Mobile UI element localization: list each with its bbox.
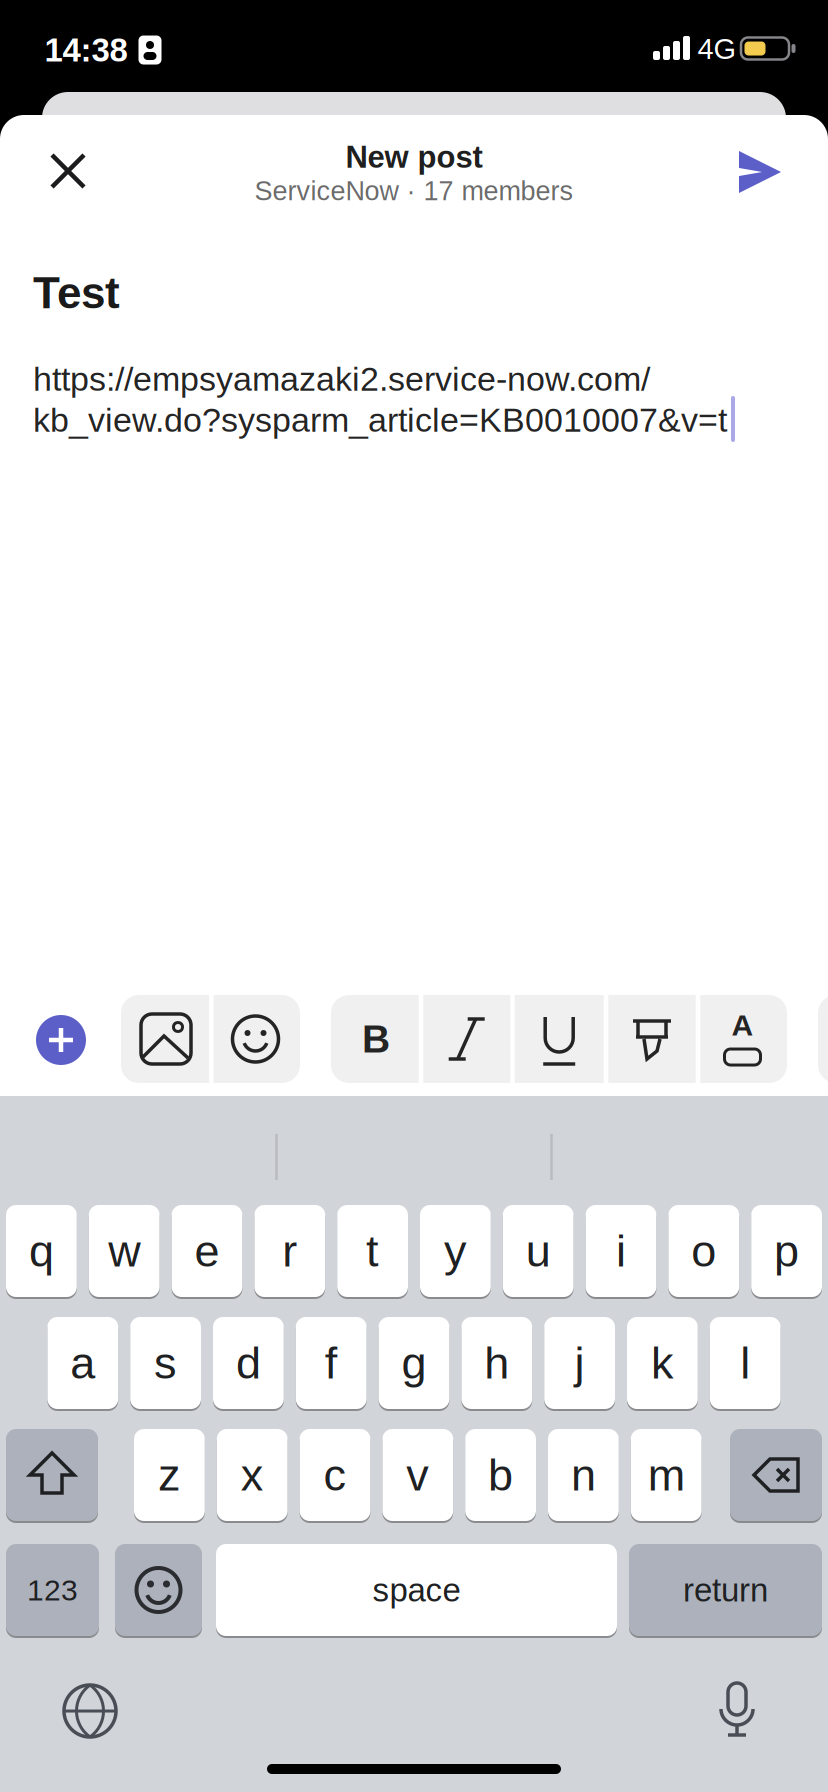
staticText: n bbox=[571, 1450, 596, 1500]
staticText: 4G bbox=[697, 33, 736, 65]
button[interactable]: f bbox=[296, 1316, 367, 1410]
button[interactable]: g bbox=[379, 1316, 449, 1410]
button[interactable]: a bbox=[47, 1316, 118, 1410]
button[interactable] bbox=[728, 140, 792, 204]
button[interactable]: e bbox=[172, 1204, 242, 1298]
staticText: v bbox=[406, 1450, 429, 1500]
button[interactable]: n bbox=[548, 1428, 619, 1522]
staticText: d bbox=[236, 1338, 261, 1388]
button[interactable]: k bbox=[627, 1316, 698, 1410]
staticText: space bbox=[372, 1572, 460, 1608]
button[interactable] bbox=[608, 995, 696, 1083]
button[interactable]: r bbox=[254, 1204, 325, 1298]
button[interactable]: l bbox=[710, 1316, 781, 1410]
button[interactable] bbox=[515, 995, 603, 1083]
staticText: y bbox=[444, 1226, 467, 1276]
staticText: https://empsyamazaki2.service-now.com/ bbox=[33, 360, 650, 398]
staticText: p bbox=[774, 1226, 799, 1276]
staticText: u bbox=[526, 1226, 551, 1276]
button[interactable]: m bbox=[631, 1428, 702, 1522]
button[interactable] bbox=[705, 1679, 769, 1743]
button[interactable]: 123 bbox=[6, 1544, 99, 1636]
button[interactable]: A bbox=[698, 995, 786, 1083]
button[interactable]: B bbox=[332, 995, 420, 1083]
staticText: j bbox=[575, 1338, 585, 1388]
staticText: kb_view.do?sysparm_article=KB0010007&v=t bbox=[33, 401, 727, 439]
button[interactable]: return bbox=[629, 1544, 822, 1636]
button[interactable] bbox=[122, 995, 210, 1083]
button[interactable]: w bbox=[89, 1204, 160, 1298]
button[interactable]: b bbox=[465, 1428, 536, 1522]
staticText: B bbox=[362, 1017, 390, 1061]
staticText: g bbox=[401, 1338, 426, 1388]
button[interactable] bbox=[423, 995, 511, 1083]
staticText: x bbox=[241, 1450, 264, 1500]
staticText: ServiceNow · 17 members bbox=[254, 176, 573, 206]
staticText: l bbox=[740, 1338, 750, 1388]
button[interactable]: v bbox=[382, 1428, 453, 1522]
button[interactable] bbox=[36, 1015, 86, 1065]
staticText: return bbox=[683, 1572, 768, 1608]
staticText: a bbox=[70, 1338, 95, 1388]
button[interactable]: d bbox=[213, 1316, 284, 1410]
button[interactable] bbox=[58, 1679, 122, 1743]
button[interactable]: t bbox=[337, 1204, 408, 1298]
button[interactable]: z bbox=[134, 1428, 205, 1522]
button[interactable] bbox=[730, 1429, 822, 1521]
button[interactable]: j bbox=[544, 1316, 615, 1410]
staticText: i bbox=[616, 1226, 626, 1276]
staticText: Test bbox=[33, 268, 120, 318]
button[interactable] bbox=[211, 995, 299, 1083]
staticText: 123 bbox=[27, 1573, 78, 1607]
button[interactable]: space bbox=[216, 1544, 617, 1636]
staticText: c bbox=[323, 1450, 346, 1500]
staticText: w bbox=[108, 1226, 140, 1276]
staticText: z bbox=[158, 1450, 181, 1500]
staticText: A bbox=[731, 1008, 753, 1042]
staticText: q bbox=[29, 1226, 54, 1276]
staticText: New post bbox=[345, 140, 482, 174]
staticText: b bbox=[488, 1450, 513, 1500]
button[interactable]: h bbox=[461, 1316, 532, 1410]
button[interactable]: x bbox=[217, 1428, 288, 1522]
button[interactable]: q bbox=[6, 1204, 77, 1298]
staticText: 14:38 bbox=[44, 32, 127, 68]
button[interactable]: i bbox=[586, 1204, 656, 1298]
button[interactable]: u bbox=[503, 1204, 574, 1298]
button[interactable]: p bbox=[751, 1204, 822, 1298]
button[interactable]: y bbox=[420, 1204, 491, 1298]
button[interactable] bbox=[6, 1429, 98, 1521]
staticText: e bbox=[194, 1226, 219, 1276]
button[interactable]: c bbox=[300, 1428, 370, 1522]
staticText: s bbox=[154, 1338, 177, 1388]
staticText: t bbox=[366, 1226, 379, 1276]
button[interactable]: s bbox=[130, 1316, 201, 1410]
button[interactable] bbox=[36, 140, 100, 204]
button[interactable]: o bbox=[668, 1204, 739, 1298]
staticText: h bbox=[484, 1338, 509, 1388]
button[interactable] bbox=[115, 1544, 202, 1636]
staticText: f bbox=[325, 1338, 338, 1388]
staticText: r bbox=[282, 1226, 297, 1276]
staticText: m bbox=[648, 1450, 685, 1500]
staticText: k bbox=[651, 1338, 674, 1388]
staticText: o bbox=[691, 1226, 716, 1276]
